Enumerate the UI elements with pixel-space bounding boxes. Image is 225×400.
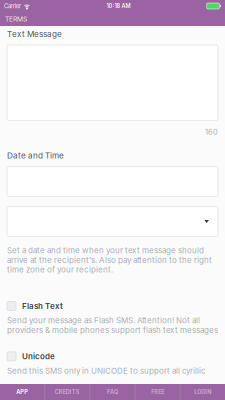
staticText: FAQ — [107, 389, 118, 395]
button[interactable]: CREDITS — [45, 384, 89, 400]
staticText: LOGIN — [194, 389, 211, 395]
staticText: TERMS — [5, 15, 27, 23]
button[interactable]: APP — [0, 384, 44, 400]
button[interactable]: Unicode — [7, 351, 218, 362]
staticText: Send this SMS only in UNICODE to support… — [7, 366, 206, 376]
staticText: Unicode — [22, 352, 55, 361]
button[interactable]: Time zone picker — [7, 206, 218, 236]
staticText: 10:18 AM — [106, 3, 130, 9]
staticText: Flash Text — [22, 301, 63, 311]
staticText: Text Message — [7, 29, 62, 39]
staticText: Date and Time — [7, 151, 64, 160]
button[interactable]: Flash Text — [7, 300, 218, 311]
button[interactable]: LOGIN — [181, 384, 225, 400]
staticText: CREDITS — [55, 389, 80, 395]
staticText: Carrier — [4, 2, 21, 10]
staticText: 160 — [205, 127, 218, 136]
button[interactable]: FAQ — [90, 384, 135, 400]
button[interactable]: FREE — [135, 384, 180, 400]
staticText: Set a date and time when your text messa… — [7, 245, 212, 274]
staticText: Send your message as Flash SMS. Attentio… — [7, 315, 218, 335]
staticText: FREE — [151, 389, 164, 395]
button[interactable]: Date field — [7, 166, 218, 196]
staticText: APP — [16, 389, 28, 395]
